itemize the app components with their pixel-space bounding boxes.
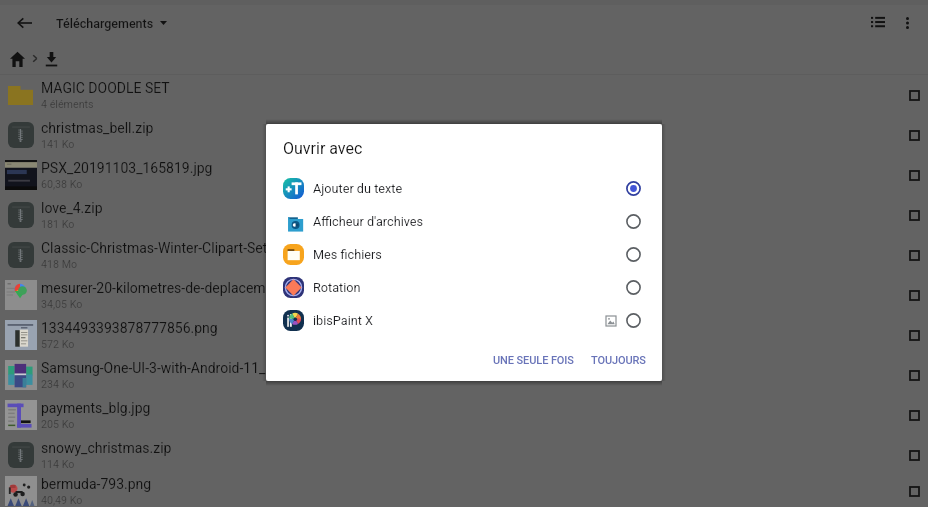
staticText: 34,05 Ko — [41, 298, 83, 311]
button[interactable]: TOUJOURS — [584, 348, 653, 373]
staticText: 234 Ko — [41, 378, 75, 391]
button[interactable]: Select — [891, 75, 928, 115]
button[interactable]: mesurer-20-kilometres-de-deplacement — [0, 275, 928, 315]
staticText: 4 éléments — [41, 98, 94, 111]
button[interactable]: Select — [891, 435, 928, 475]
button[interactable]: Downloads — [39, 47, 64, 72]
button[interactable]: Samsung-One-UI-3-with-Android-11_ — [0, 355, 928, 395]
staticText: 141 Ko — [41, 138, 75, 151]
button[interactable]: Mes fichiers — [266, 238, 662, 271]
button[interactable]: Select — [891, 195, 928, 235]
staticText: 40,49 Ko — [41, 494, 83, 507]
staticText: PSX_20191103_165819.jpg — [41, 160, 213, 176]
staticText: Ajouter du texte — [313, 181, 403, 196]
staticText: 205 Ko — [41, 418, 75, 431]
button[interactable]: Home — [5, 46, 30, 71]
button[interactable]: Afficheur d'archives — [266, 205, 662, 238]
button[interactable]: payments_blg.jpg — [0, 395, 928, 435]
staticText: christmas_bell.zip — [41, 120, 154, 136]
staticText: bermuda-793.png — [41, 476, 152, 492]
staticText: 572 Ko — [41, 338, 75, 351]
staticText: TOUJOURS — [591, 354, 646, 367]
button[interactable]: Back — [8, 7, 40, 39]
button[interactable]: Select — [891, 475, 928, 507]
button[interactable]: love_4.zip — [0, 195, 928, 235]
button[interactable]: Select — [891, 395, 928, 435]
button[interactable]: MAGIC DOODLE SET — [0, 75, 928, 115]
button[interactable]: Select — [891, 155, 928, 195]
button[interactable]: Select — [891, 355, 928, 395]
staticText: 1334493393878777856.png — [41, 320, 218, 336]
staticText: Classic-Christmas-Winter-Clipart-Set — [41, 240, 268, 256]
staticText: 114 Ko — [41, 458, 75, 471]
staticText: payments_blg.jpg — [41, 400, 151, 416]
staticText: 418 Mo — [41, 258, 78, 271]
button[interactable]: Select — [891, 315, 928, 355]
staticText: Samsung-One-UI-3-with-Android-11_ — [41, 360, 266, 376]
staticText: Rotation — [313, 280, 361, 295]
staticText: UNE SEULE FOIS — [493, 354, 574, 367]
button[interactable]: christmas_bell.zip — [0, 115, 928, 155]
button[interactable]: snowy_christmas.zip — [0, 435, 928, 475]
button[interactable]: Rotation — [266, 271, 662, 304]
staticText: Afficheur d'archives — [313, 214, 424, 229]
staticText: 60,38 Ko — [41, 178, 83, 191]
staticText: Mes fichiers — [313, 247, 382, 262]
staticText: mesurer-20-kilometres-de-deplacement — [41, 280, 286, 296]
button[interactable]: UNE SEULE FOIS — [486, 348, 581, 373]
button[interactable]: Select — [891, 275, 928, 315]
staticText: ibisPaint X — [313, 313, 374, 328]
button[interactable]: Select — [891, 115, 928, 155]
button[interactable]: Téléchargements — [56, 3, 173, 43]
button[interactable]: More options — [891, 7, 923, 39]
button[interactable]: ibisPaint X — [266, 304, 662, 337]
button[interactable]: Classic-Christmas-Winter-Clipart-Set — [0, 235, 928, 275]
staticText: snowy_christmas.zip — [41, 440, 172, 456]
button[interactable]: PSX_20191103_165819.jpg — [0, 155, 928, 195]
button[interactable]: Select — [891, 235, 928, 275]
staticText: Ouvrir avec — [283, 139, 363, 158]
staticText: 181 Ko — [41, 218, 75, 231]
button[interactable]: 1334493393878777856.png — [0, 315, 928, 355]
button[interactable]: Ajouter du texte — [266, 172, 662, 205]
staticText: MAGIC DOODLE SET — [41, 80, 170, 96]
staticText: Téléchargements — [56, 16, 154, 31]
button[interactable]: bermuda-793.png — [0, 475, 928, 507]
button[interactable]: List view — [863, 6, 893, 36]
staticText: love_4.zip — [41, 200, 103, 216]
